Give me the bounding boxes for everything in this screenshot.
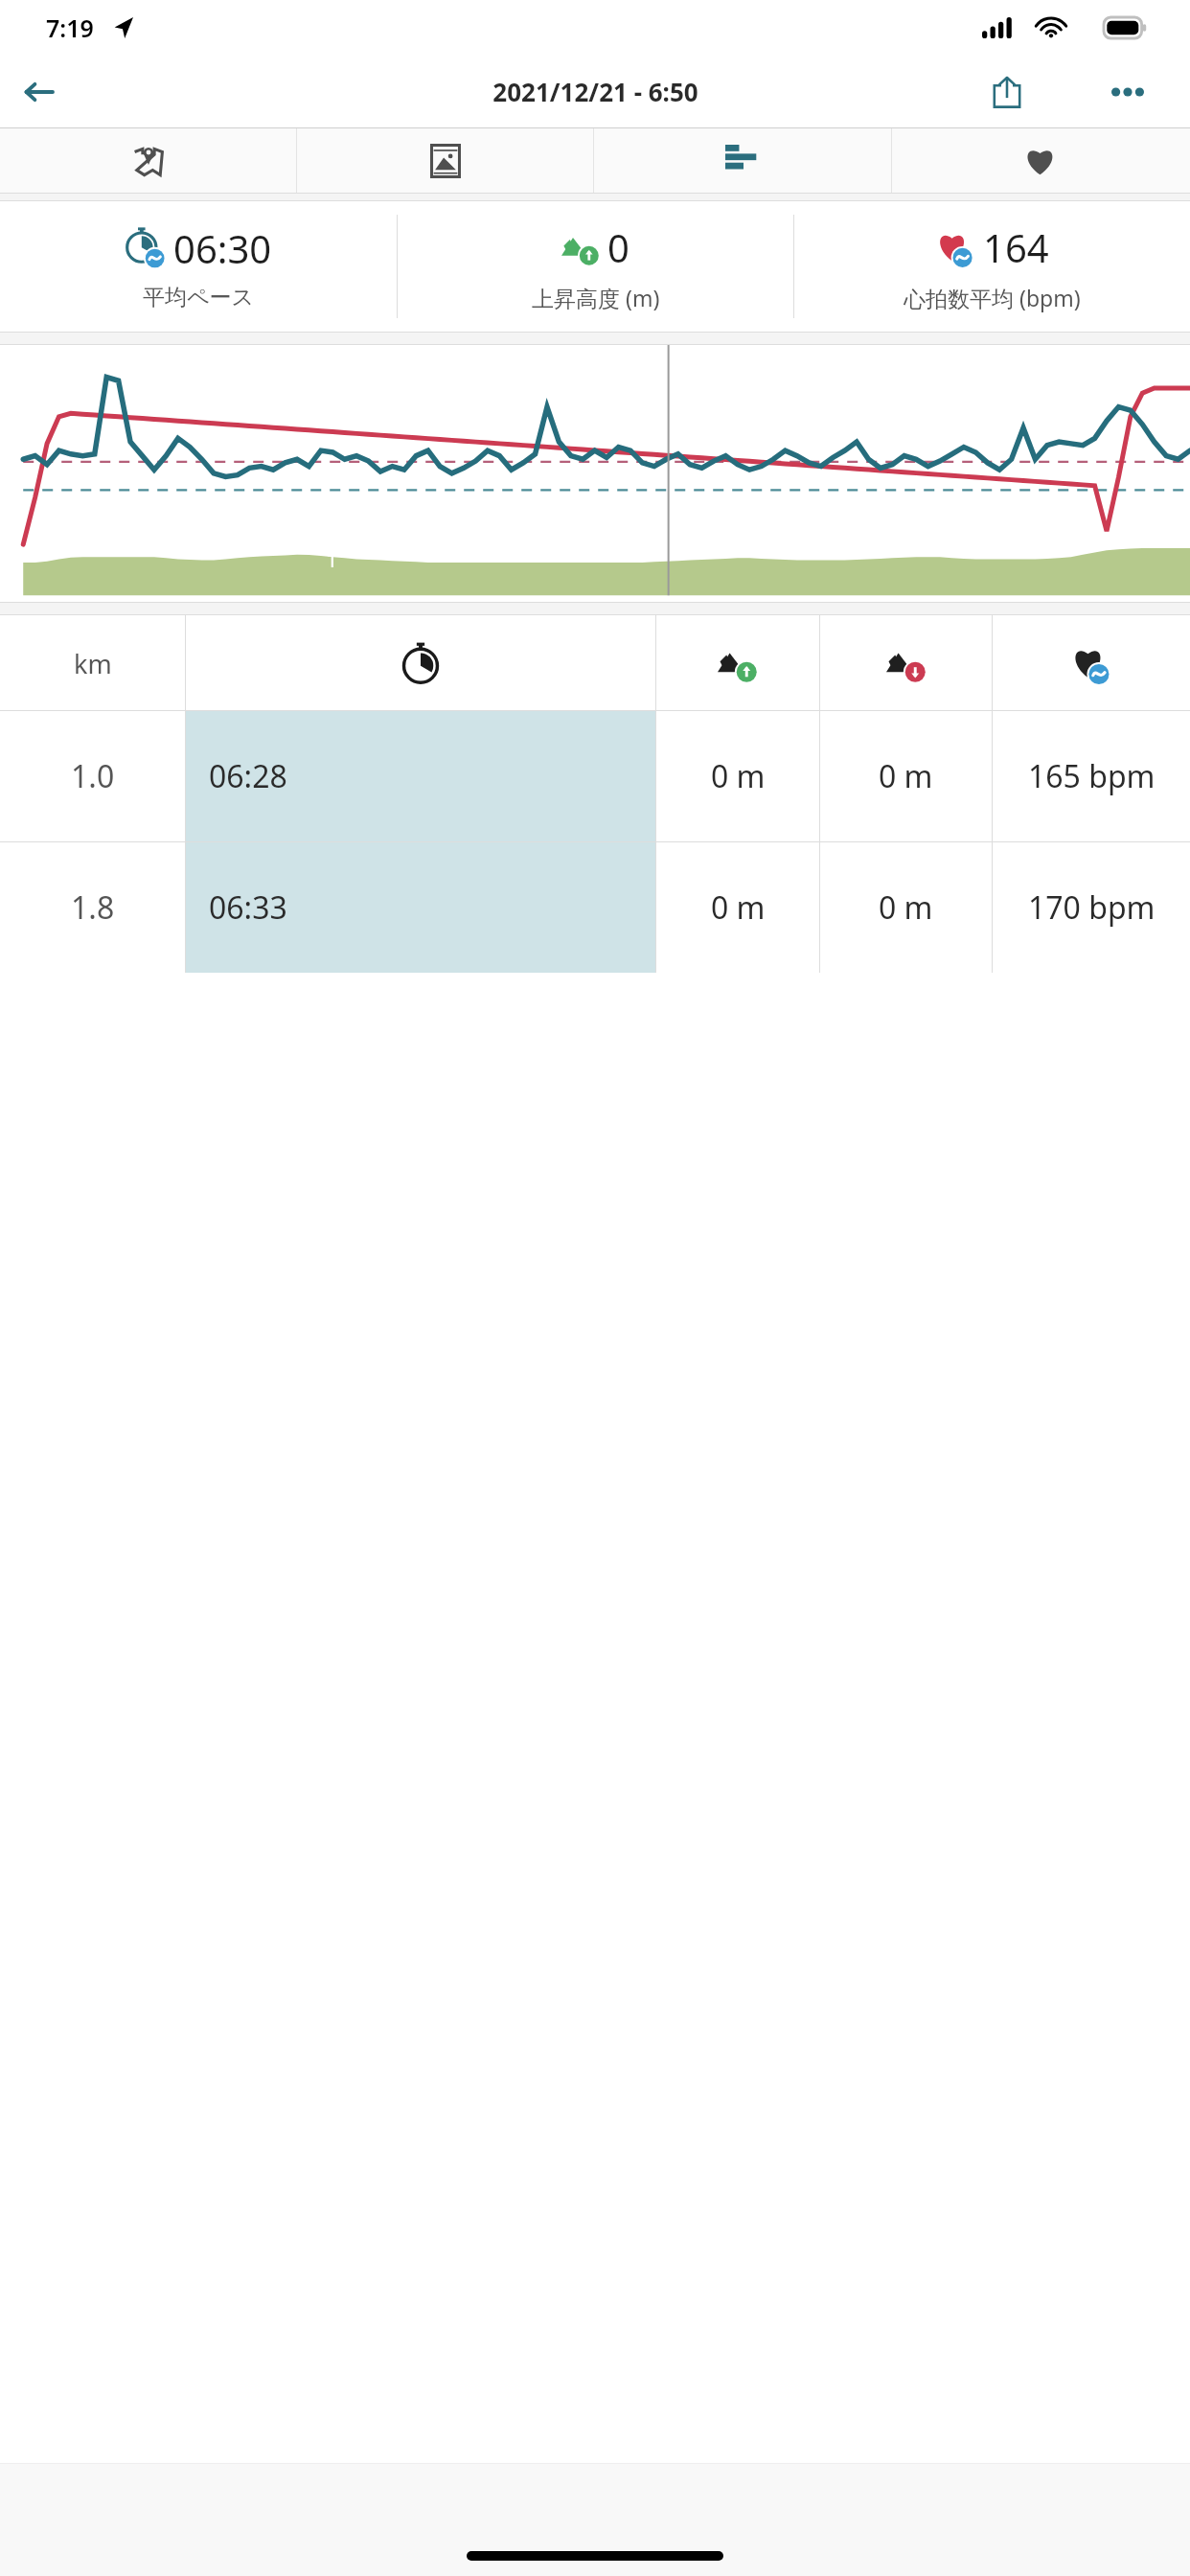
staticText: 0 (607, 221, 629, 273)
staticText: 平均ペース (143, 284, 255, 311)
staticText: 1 (326, 544, 338, 573)
staticText: 0 m (711, 755, 766, 797)
staticText: 2021/12/21 - 6:50 (492, 75, 698, 108)
staticText: 170 bpm (1028, 886, 1156, 929)
staticText: 7:19 (46, 11, 94, 44)
button[interactable]: More options (1098, 62, 1157, 122)
button[interactable]: Share (977, 62, 1037, 122)
staticText: 06:33 (209, 886, 287, 929)
button[interactable]: 1.0 (0, 711, 1190, 841)
staticText: 164 (983, 221, 1049, 273)
staticText: 上昇高度 (m) (532, 283, 660, 312)
button[interactable]: Map (0, 128, 297, 193)
staticText: 心拍数平均 (bpm) (904, 283, 1081, 312)
button[interactable]: Photos (297, 128, 594, 193)
staticText: 06:30 (173, 222, 272, 274)
button[interactable]: Charts (594, 128, 892, 193)
button[interactable]: 06:30 (0, 201, 397, 332)
staticText: 06:28 (209, 755, 287, 797)
staticText: km (74, 646, 112, 681)
staticText: 0 m (711, 886, 766, 929)
button[interactable]: Back (10, 63, 67, 121)
button[interactable]: 164 (794, 201, 1190, 332)
button[interactable]: Heart rate (892, 128, 1190, 193)
staticText: 1.0 (71, 755, 115, 797)
staticText: 0 m (879, 755, 933, 797)
button[interactable]: 0 (398, 201, 793, 332)
button[interactable]: 1.8 (0, 842, 1190, 973)
staticText: 0 m (879, 886, 933, 929)
staticText: 165 bpm (1028, 755, 1156, 797)
staticText: 1.8 (71, 886, 115, 929)
